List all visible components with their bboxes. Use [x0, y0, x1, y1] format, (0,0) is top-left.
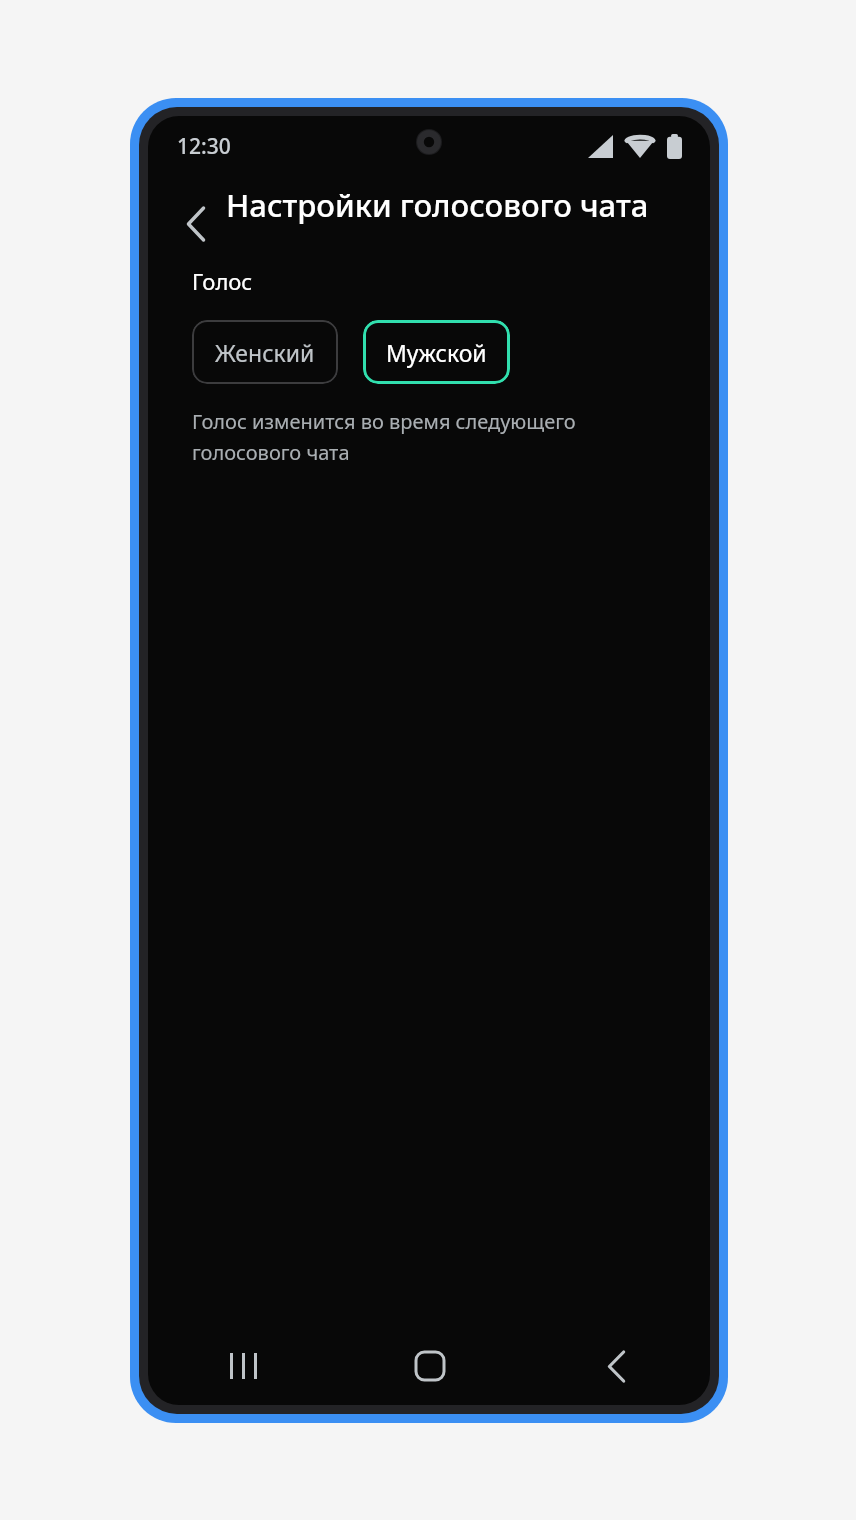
button[interactable]: Home — [336, 1327, 523, 1405]
button[interactable]: Back — [523, 1327, 710, 1405]
staticText: Голос изменится во время следующего голо… — [192, 408, 670, 466]
staticText: Настройки голосового чата — [226, 184, 649, 226]
button[interactable]: Recent apps — [148, 1327, 336, 1405]
staticText: 12:30 — [177, 132, 231, 161]
button[interactable]: Мужской — [363, 320, 510, 384]
staticText: Мужской — [386, 337, 487, 368]
button[interactable]: Back — [170, 198, 222, 250]
staticText: Женский — [215, 337, 315, 368]
button[interactable]: Женский — [192, 320, 338, 384]
staticText: Голос — [192, 266, 253, 296]
